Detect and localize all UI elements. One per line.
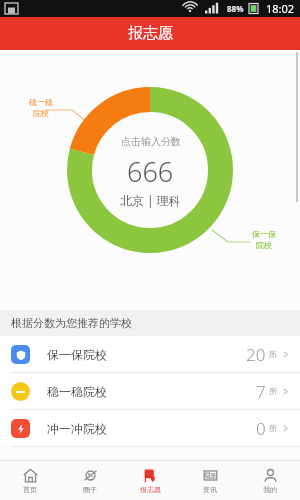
staticText: 我的 (263, 485, 277, 494)
button[interactable]: 圈子 (60, 461, 120, 500)
staticText: 0 (256, 417, 266, 440)
button[interactable]: 冲一冲院校 (0, 410, 300, 446)
staticText: 报志愿 (140, 485, 161, 494)
staticText: 院校 (33, 108, 49, 118)
button[interactable]: 首页 (0, 461, 60, 500)
staticText: 666 (127, 153, 174, 190)
staticText: 点击输入分数 (121, 135, 181, 148)
button[interactable]: 稳一稳院校 (0, 373, 300, 409)
button[interactable]: 资讯 (180, 461, 240, 500)
button[interactable]: 保一保院校 (0, 336, 300, 372)
staticText: 保一保 (252, 229, 276, 239)
staticText: 所 (269, 349, 277, 359)
staticText: 保一保院校 (47, 347, 107, 362)
staticText: 稳一稳 (29, 97, 53, 107)
staticText: 稳一稳院校 (47, 384, 107, 399)
staticText: 圈子 (83, 485, 97, 494)
staticText: 所 (269, 423, 277, 433)
staticText: 报志愿 (128, 24, 173, 43)
button[interactable]: 点击输入分数 (120, 135, 181, 208)
staticText: 院校 (256, 240, 272, 250)
staticText: 根据分数为您推荐的学校 (11, 316, 132, 330)
staticText: 18:02 (266, 1, 295, 16)
staticText: 所 (269, 386, 277, 396)
staticText: 7 (256, 380, 266, 403)
button[interactable]: 报志愿 (120, 461, 180, 500)
staticText: 首页 (23, 485, 37, 494)
staticText: 冲一冲院校 (47, 421, 107, 436)
staticText: 20 (246, 343, 266, 366)
staticText: 88% (227, 3, 244, 14)
staticText: 资讯 (203, 485, 217, 494)
button[interactable]: 我的 (240, 461, 300, 500)
staticText: 北京 | 理科 (120, 192, 181, 208)
